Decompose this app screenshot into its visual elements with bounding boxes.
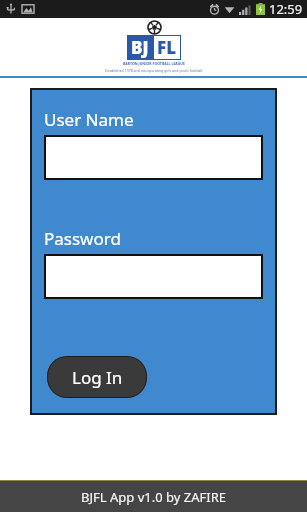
staticText: Log In	[72, 366, 123, 389]
staticText: Password	[44, 227, 121, 250]
staticText: 12:59	[269, 0, 303, 18]
staticText: Established 1978 and incorporating girls…	[105, 68, 203, 73]
staticText: FL	[157, 36, 177, 59]
staticText: BARTON JUNIOR FOOTBALL LEAGUE	[123, 61, 185, 66]
button[interactable]: Log In	[47, 356, 147, 398]
staticText: User Name	[44, 108, 134, 131]
staticText: BJFL App v1.0 by ZAFIRE	[81, 488, 226, 506]
staticText: BJ	[131, 36, 149, 59]
